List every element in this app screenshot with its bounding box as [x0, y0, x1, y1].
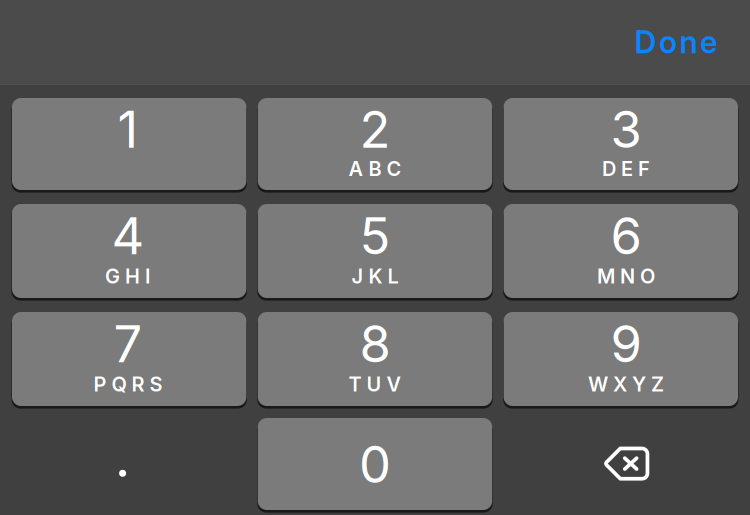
staticText: JKL [352, 264, 399, 288]
staticText: 3 [610, 99, 641, 160]
staticText: DEF [602, 156, 650, 181]
button[interactable]: Done [435, 8, 718, 76]
button[interactable]: 7 [12, 312, 246, 406]
staticText: MNO [597, 264, 655, 288]
button[interactable]: Decimal point [12, 418, 246, 510]
staticText: PQRS [93, 372, 162, 396]
staticText: 0 [359, 434, 391, 495]
button[interactable]: 9 [504, 312, 738, 406]
button[interactable]: 6 [504, 204, 738, 298]
staticText: 4 [111, 205, 144, 267]
button[interactable]: 1 [12, 98, 246, 190]
staticText: 1 [117, 99, 138, 160]
button[interactable]: 5 [258, 204, 492, 298]
staticText: 2 [360, 99, 391, 160]
staticText: WXYZ [588, 372, 664, 396]
button[interactable]: 0 [258, 418, 492, 510]
staticText: 5 [360, 205, 391, 267]
staticText: TUV [349, 372, 402, 396]
staticText: 8 [360, 313, 391, 375]
staticText: 7 [113, 313, 142, 375]
button[interactable]: 4 [12, 204, 246, 298]
button[interactable]: 2 [258, 98, 492, 190]
button[interactable]: 8 [258, 312, 492, 406]
staticText: 6 [610, 205, 641, 267]
staticText: ABC [349, 156, 402, 181]
staticText: 9 [610, 313, 641, 375]
staticText: Done [634, 23, 718, 60]
button[interactable]: 3 [504, 98, 738, 190]
staticText: GHI [105, 264, 151, 288]
button[interactable]: Delete [504, 418, 738, 510]
